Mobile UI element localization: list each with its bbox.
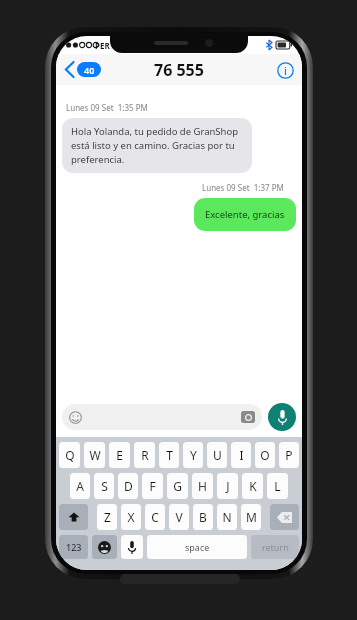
button[interactable]: B: [193, 504, 213, 530]
staticText: P: [285, 447, 293, 463]
button[interactable]: L: [267, 473, 288, 499]
button[interactable]: Hola Yolanda, tu pedido de GranShop está…: [62, 118, 252, 173]
staticText: L: [274, 478, 281, 494]
button[interactable]: S: [94, 473, 114, 499]
button[interactable]: P: [279, 442, 299, 468]
staticText: C: [151, 509, 159, 525]
staticText: X: [127, 509, 135, 525]
button[interactable]: Details: [276, 61, 294, 79]
button[interactable]: Back, 40 unread: [63, 58, 103, 81]
button[interactable]: R: [134, 442, 155, 468]
button[interactable]: Emoji keyboard: [92, 535, 117, 559]
button[interactable]: Excelente, gracias: [194, 198, 296, 231]
button[interactable]: N: [217, 504, 237, 530]
button[interactable]: M: [241, 504, 261, 530]
button[interactable]: J: [217, 473, 238, 499]
button[interactable]: return: [251, 535, 299, 559]
button[interactable]: O: [255, 442, 275, 468]
button[interactable]: W: [84, 442, 105, 468]
staticText: J: [226, 478, 230, 494]
button[interactable]: E: [109, 442, 130, 468]
other: Emoji: [69, 411, 82, 424]
staticText: 40: [84, 64, 95, 76]
staticText: space: [185, 541, 210, 553]
staticText: return: [262, 541, 289, 553]
button[interactable]: Backspace: [270, 504, 299, 530]
button[interactable]: H: [192, 473, 213, 499]
button[interactable]: U: [207, 442, 227, 468]
staticText: Lunes 09 Set 1:37 PM: [202, 182, 284, 193]
staticText: Lunes 09 Set 1:35 PM: [66, 102, 148, 113]
staticText: i: [284, 63, 287, 78]
staticText: I: [239, 447, 244, 463]
button[interactable]: G: [167, 473, 188, 499]
staticText: B: [199, 509, 207, 525]
button[interactable]: Z: [97, 504, 117, 530]
staticText: M: [246, 509, 257, 525]
button[interactable]: Shift: [59, 504, 88, 530]
staticText: 123: [66, 541, 82, 553]
button[interactable]: X: [121, 504, 141, 530]
staticText: A: [76, 478, 84, 494]
staticText: T: [166, 447, 173, 463]
staticText: 76 555: [154, 59, 204, 81]
button[interactable]: Voice message: [268, 403, 296, 431]
staticText: O: [260, 447, 270, 463]
staticText: E: [116, 447, 123, 463]
button[interactable]: Y: [183, 442, 203, 468]
button[interactable]: F: [142, 473, 163, 499]
button[interactable]: Camera: [241, 411, 255, 423]
staticText: F: [149, 478, 156, 494]
staticText: S: [101, 478, 108, 494]
button[interactable]: Dictate: [121, 535, 143, 559]
staticText: PER: [95, 40, 110, 51]
button[interactable]: Numbers: [59, 535, 88, 559]
button[interactable]: space: [147, 535, 247, 559]
button[interactable]: D: [118, 473, 138, 499]
staticText: K: [249, 478, 257, 494]
staticText: Q: [65, 447, 75, 463]
staticText: Excelente, gracias: [205, 208, 285, 221]
staticText: Hola Yolanda, tu pedido de GranShop está…: [71, 125, 243, 166]
staticText: D: [124, 478, 133, 494]
button[interactable]: T: [159, 442, 179, 468]
staticText: N: [222, 509, 232, 525]
staticText: H: [198, 478, 207, 494]
button[interactable]: K: [242, 473, 263, 499]
button[interactable]: Emoji: [62, 404, 262, 430]
staticText: R: [141, 447, 149, 463]
button[interactable]: A: [70, 473, 90, 499]
staticText: V: [175, 509, 183, 525]
staticText: G: [173, 478, 182, 494]
staticText: U: [213, 447, 222, 463]
button[interactable]: Q: [59, 442, 80, 468]
staticText: W: [89, 447, 101, 463]
button[interactable]: I: [231, 442, 251, 468]
staticText: Z: [104, 509, 111, 525]
button[interactable]: V: [169, 504, 189, 530]
button[interactable]: C: [145, 504, 165, 530]
staticText: Y: [190, 447, 197, 463]
